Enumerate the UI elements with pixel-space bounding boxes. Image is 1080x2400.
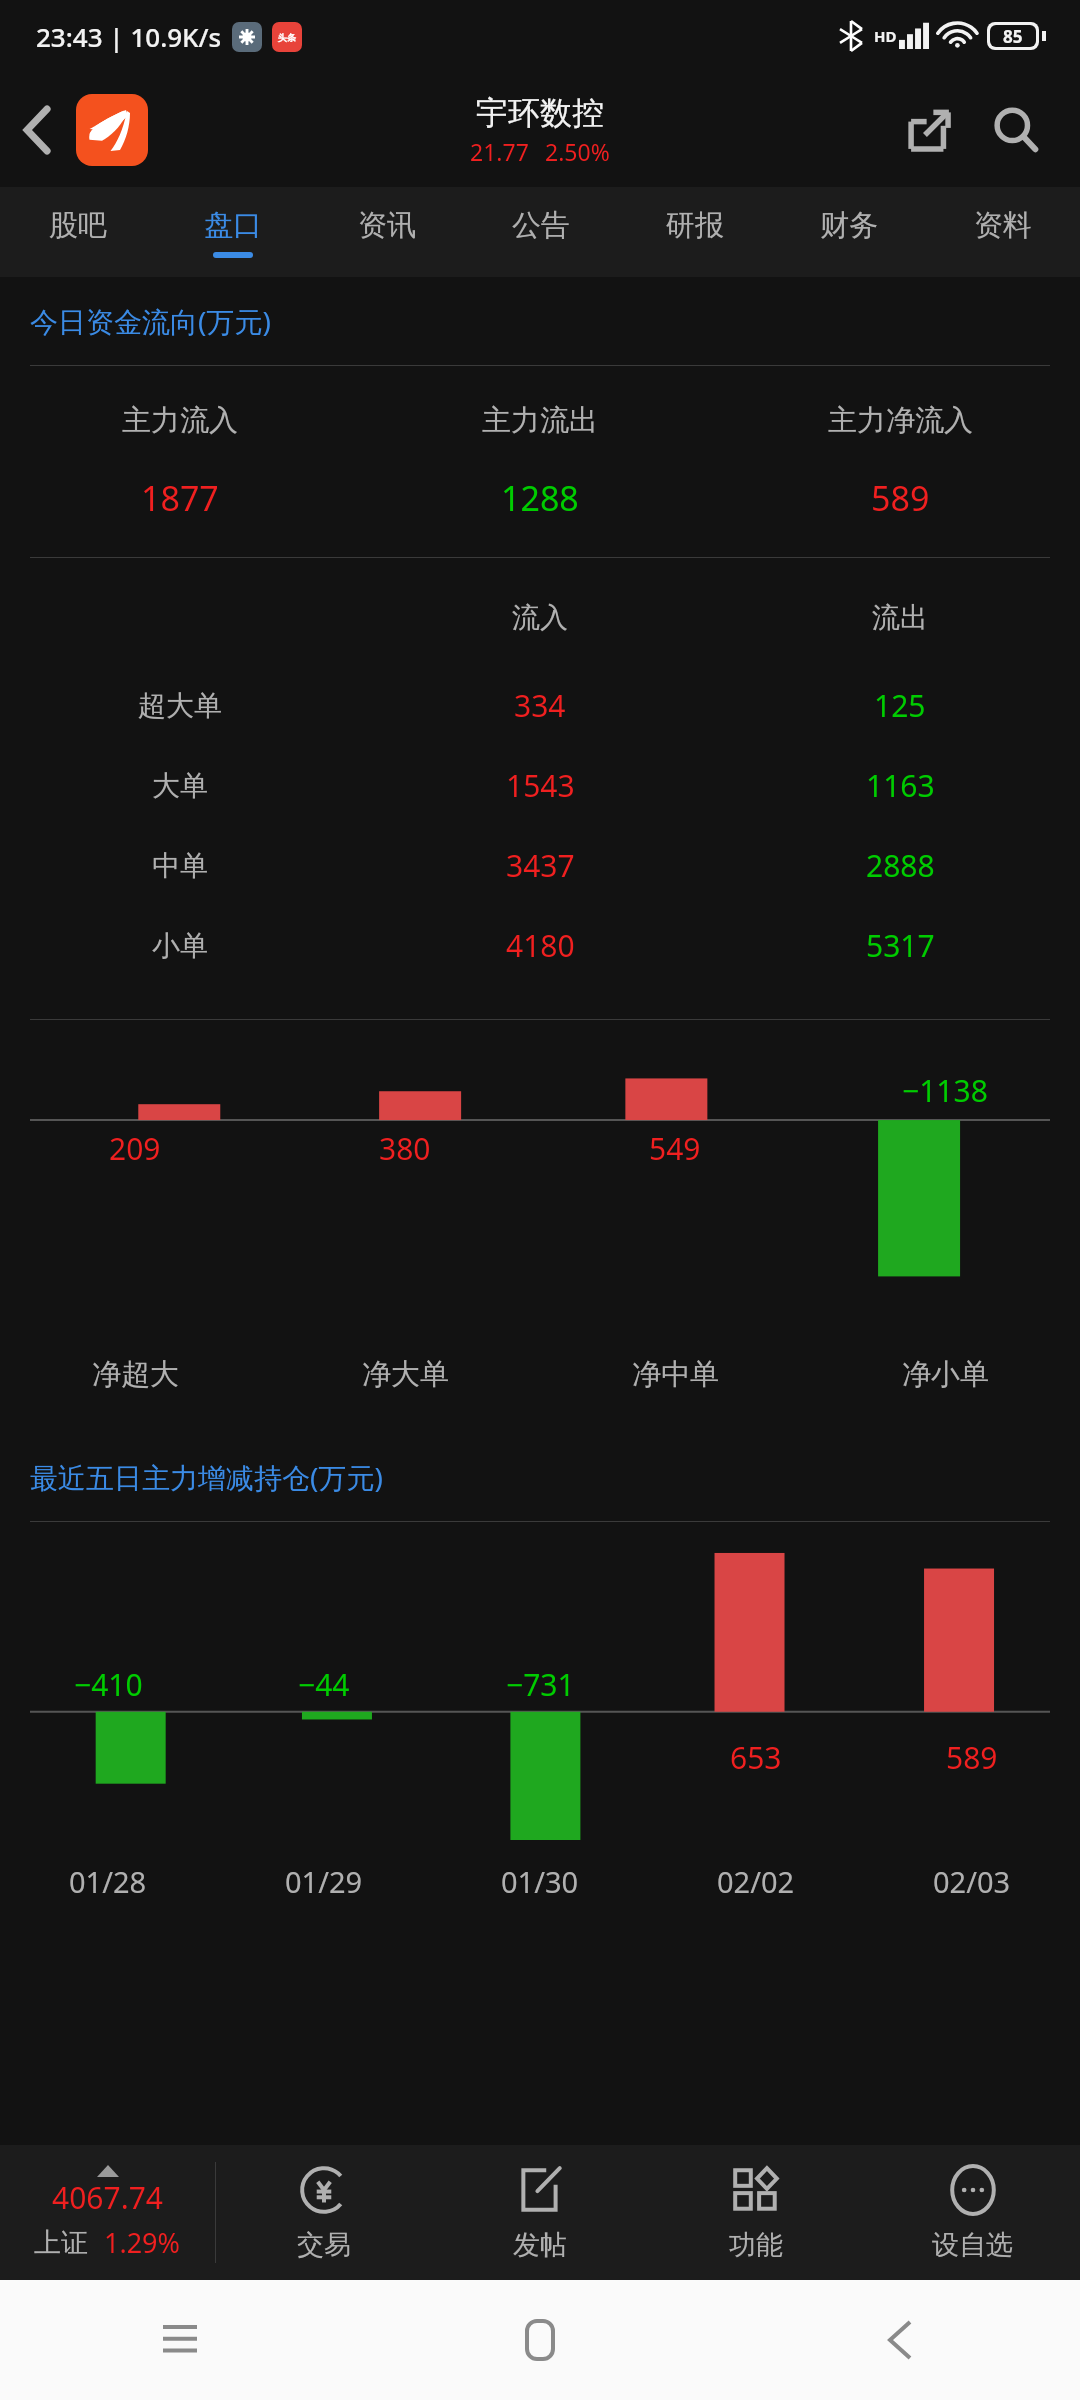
staticText: −44 [298,1664,350,1705]
staticText: 中单 [152,848,208,883]
button[interactable]: 资料 [926,187,1080,277]
button[interactable]: Share [892,92,968,168]
staticText: 财务 [820,207,878,244]
button[interactable]: Back [0,72,76,187]
staticText: 流入 [512,600,568,635]
button[interactable]: 盘口 [155,187,310,277]
staticText: 设自选 [932,2228,1013,2262]
staticText: 01/30 [501,1862,579,1901]
staticText: 超大单 [138,688,222,723]
staticText: 大单 [152,768,208,803]
staticText: 主力流入 [122,402,238,439]
button[interactable]: Search [978,92,1054,168]
button[interactable]: 资讯 [310,187,464,277]
staticText: 净中单 [632,1356,719,1393]
staticText: 股吧 [49,207,107,244]
staticText: 主力净流入 [828,402,973,439]
staticText: 1163 [866,765,935,806]
button[interactable]: 公告 [464,187,618,277]
staticText: 资讯 [358,207,416,244]
staticText: 今日资金流向(万元) [30,302,271,340]
staticText: 4067.74 [52,2177,163,2218]
staticText: 1877 [141,475,219,521]
staticText: 盘口 [204,207,262,244]
staticText: 净小单 [902,1356,989,1393]
button[interactable]: Home [360,2280,720,2400]
staticText: 4180 [506,925,575,966]
staticText: 5317 [866,925,935,966]
staticText: 1543 [506,765,575,806]
button[interactable]: App logo [76,94,148,166]
staticText: 资料 [974,207,1032,244]
button[interactable]: 发帖 [432,2145,648,2280]
staticText: 334 [514,685,566,726]
staticText: 589 [946,1737,998,1778]
button[interactable]: 交易 [216,2145,432,2280]
button[interactable]: 财务 [772,187,926,277]
staticText: 589 [871,475,930,521]
staticText: 125 [874,685,926,726]
button[interactable]: 功能 [648,2145,864,2280]
staticText: 380 [379,1128,431,1169]
staticText: 653 [730,1737,782,1778]
staticText: 研报 [666,207,724,244]
staticText: 净超大 [92,1356,179,1393]
staticText: 公告 [512,207,570,244]
staticText: 02/02 [717,1862,795,1901]
staticText: 功能 [729,2228,783,2262]
staticText: 85 [1003,25,1023,47]
staticText: 发帖 [513,2228,567,2262]
staticText: 交易 [297,2228,351,2262]
staticText: 3437 [506,845,575,886]
staticText: 宇环数控 [476,93,604,133]
staticText: 209 [109,1128,161,1169]
staticText: 02/03 [933,1862,1011,1901]
staticText: −731 [506,1664,575,1705]
staticText: 上证 [34,2226,88,2260]
staticText: 01/28 [69,1862,147,1901]
button[interactable]: Recents [0,2280,360,2400]
staticText: 净大单 [362,1356,449,1393]
staticText: 小单 [152,928,208,963]
staticText: 1.29% [104,2224,181,2261]
staticText: −410 [74,1664,143,1705]
staticText: HD [874,26,897,46]
staticText: 21.77 [470,136,529,167]
staticText: 01/29 [285,1862,363,1901]
button[interactable]: 股吧 [0,187,155,277]
staticText: 流出 [872,600,928,635]
staticText: 最近五日主力增减持仓(万元) [30,1458,383,1496]
button[interactable]: 设自选 [864,2145,1080,2280]
staticText: 2.50% [545,136,610,167]
button[interactable]: 4067.74 [0,2145,215,2280]
staticText: 2888 [866,845,935,886]
staticText: 主力流出 [482,402,598,439]
staticText: 1288 [501,475,579,521]
staticText: 549 [649,1128,701,1169]
staticText: 头条 [278,32,296,43]
staticText: −1138 [902,1070,988,1111]
button[interactable]: 研报 [618,187,772,277]
staticText: 23:43 | 10.9K/s [36,19,222,54]
button[interactable]: Back [720,2280,1080,2400]
